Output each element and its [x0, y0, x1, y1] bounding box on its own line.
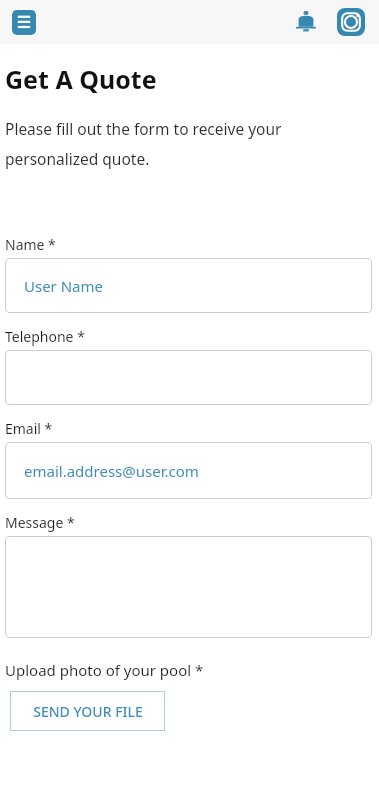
button[interactable]: Menu [11, 9, 37, 35]
button[interactable] [5, 536, 372, 638]
staticText: Get A Quote [5, 62, 157, 96]
staticText: Telephone * [5, 327, 85, 346]
staticText: Name * [5, 235, 56, 254]
staticText: User Name [24, 276, 104, 296]
staticText: Upload photo of your pool * [5, 660, 204, 680]
staticText: Please fill out the form to receive your… [5, 118, 329, 169]
button[interactable]: email.address@user.com [5, 442, 372, 499]
staticText: SEND YOUR FILE [33, 702, 143, 721]
staticText: Message * [5, 513, 75, 532]
button[interactable] [5, 350, 372, 405]
button[interactable]: User Name [5, 258, 372, 313]
button[interactable]: Instagram [336, 7, 366, 37]
staticText: email.address@user.com [24, 461, 199, 481]
button[interactable]: Notifications [291, 7, 321, 37]
staticText: Email * [5, 419, 53, 438]
button[interactable]: SEND YOUR FILE [10, 691, 165, 731]
